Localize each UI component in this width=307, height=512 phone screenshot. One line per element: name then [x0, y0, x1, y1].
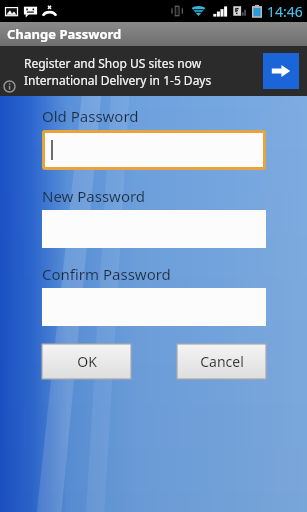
button[interactable]: Cancel [177, 344, 266, 379]
staticText: Confirm Password [42, 264, 171, 284]
staticText: Register and Shop US sites now [24, 55, 202, 71]
staticText: Old Password [42, 106, 139, 126]
button[interactable]: Open ad [263, 53, 299, 89]
button[interactable] [45, 133, 263, 167]
staticText: International Delivery in 1-5 Days [24, 72, 212, 88]
staticText: OK [77, 352, 97, 371]
staticText: Change Password [7, 25, 122, 43]
button[interactable]: Ad information [3, 80, 16, 93]
button[interactable]: Register and Shop US sites now [0, 46, 307, 96]
staticText: New Password [42, 186, 146, 206]
staticText: Cancel [200, 352, 244, 371]
button[interactable]: OK [42, 344, 131, 379]
staticText: 14:46 [267, 2, 303, 21]
